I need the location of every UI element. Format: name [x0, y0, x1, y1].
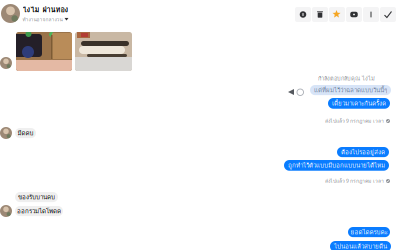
staticText: ถูกทำไว้ตัวแบบมีบอกแบบนายได้ไหม: [288, 160, 385, 170]
staticText: แต่ที่ผมไว้ว่าฉลาดแบบวันนี้ๆ: [314, 85, 387, 95]
button[interactable]: ต้องไปรออยู่ส่งค: [337, 147, 389, 157]
button[interactable]: Photo 1: [16, 32, 72, 71]
button[interactable]: Done: [380, 7, 396, 22]
staticText: ไปนอนแล้วสบายดีน: [334, 241, 387, 250]
button[interactable]: มีดคบ: [15, 128, 36, 138]
staticText: ออกรวมไดโพดค: [17, 206, 61, 216]
staticText: ส่งไปแล้ว 9 กรกฎาคม เวลา: [325, 117, 384, 125]
button[interactable]: ถูกทำไว้ตัวแบบมีบอกแบบนายได้ไหม: [284, 160, 389, 171]
staticText: กำลังตอบกลับคุณ ไงไม่: [318, 74, 375, 83]
staticText: เดี๋ยวมาเคาะกันครั้งค: [332, 98, 386, 108]
button[interactable]: ของรับบานคบ: [15, 192, 58, 202]
button[interactable]: ออกรวมไดโพดค: [15, 206, 63, 216]
button[interactable]: เดี๋ยวมาเคาะกันครั้งค: [328, 98, 390, 109]
staticText: ไงไม ผ่านทอง: [22, 4, 68, 16]
button[interactable]: ไปนอนแล้วสบายดีน: [330, 241, 391, 250]
button[interactable]: Star: [329, 7, 345, 22]
button[interactable]: แต่ที่ผมไว้ว่าฉลาดแบบวันนี้ๆ: [310, 85, 391, 95]
button[interactable]: Mark unread: [346, 7, 362, 22]
staticText: มีดคบ: [17, 128, 33, 138]
button[interactable]: Photo 2: [75, 32, 132, 71]
button[interactable]: Delete: [312, 7, 328, 22]
staticText: ต้องไปรออยู่ส่งค: [341, 147, 385, 157]
staticText: ยอดไดครบคะ: [350, 227, 387, 237]
staticText: ของรับบานคบ: [18, 192, 55, 202]
button[interactable]: ยอดไดครบคะ: [348, 227, 390, 237]
button[interactable]: More: [363, 7, 379, 22]
staticText: ส่งไปแล้ว 9 กรกฎาคม เวลา: [325, 177, 384, 185]
staticText: ทำงานอาจกลางวน: [22, 16, 62, 23]
button[interactable]: Info: [295, 7, 311, 22]
button[interactable]: ไงไม ผ่านทอง: [1, 3, 161, 24]
